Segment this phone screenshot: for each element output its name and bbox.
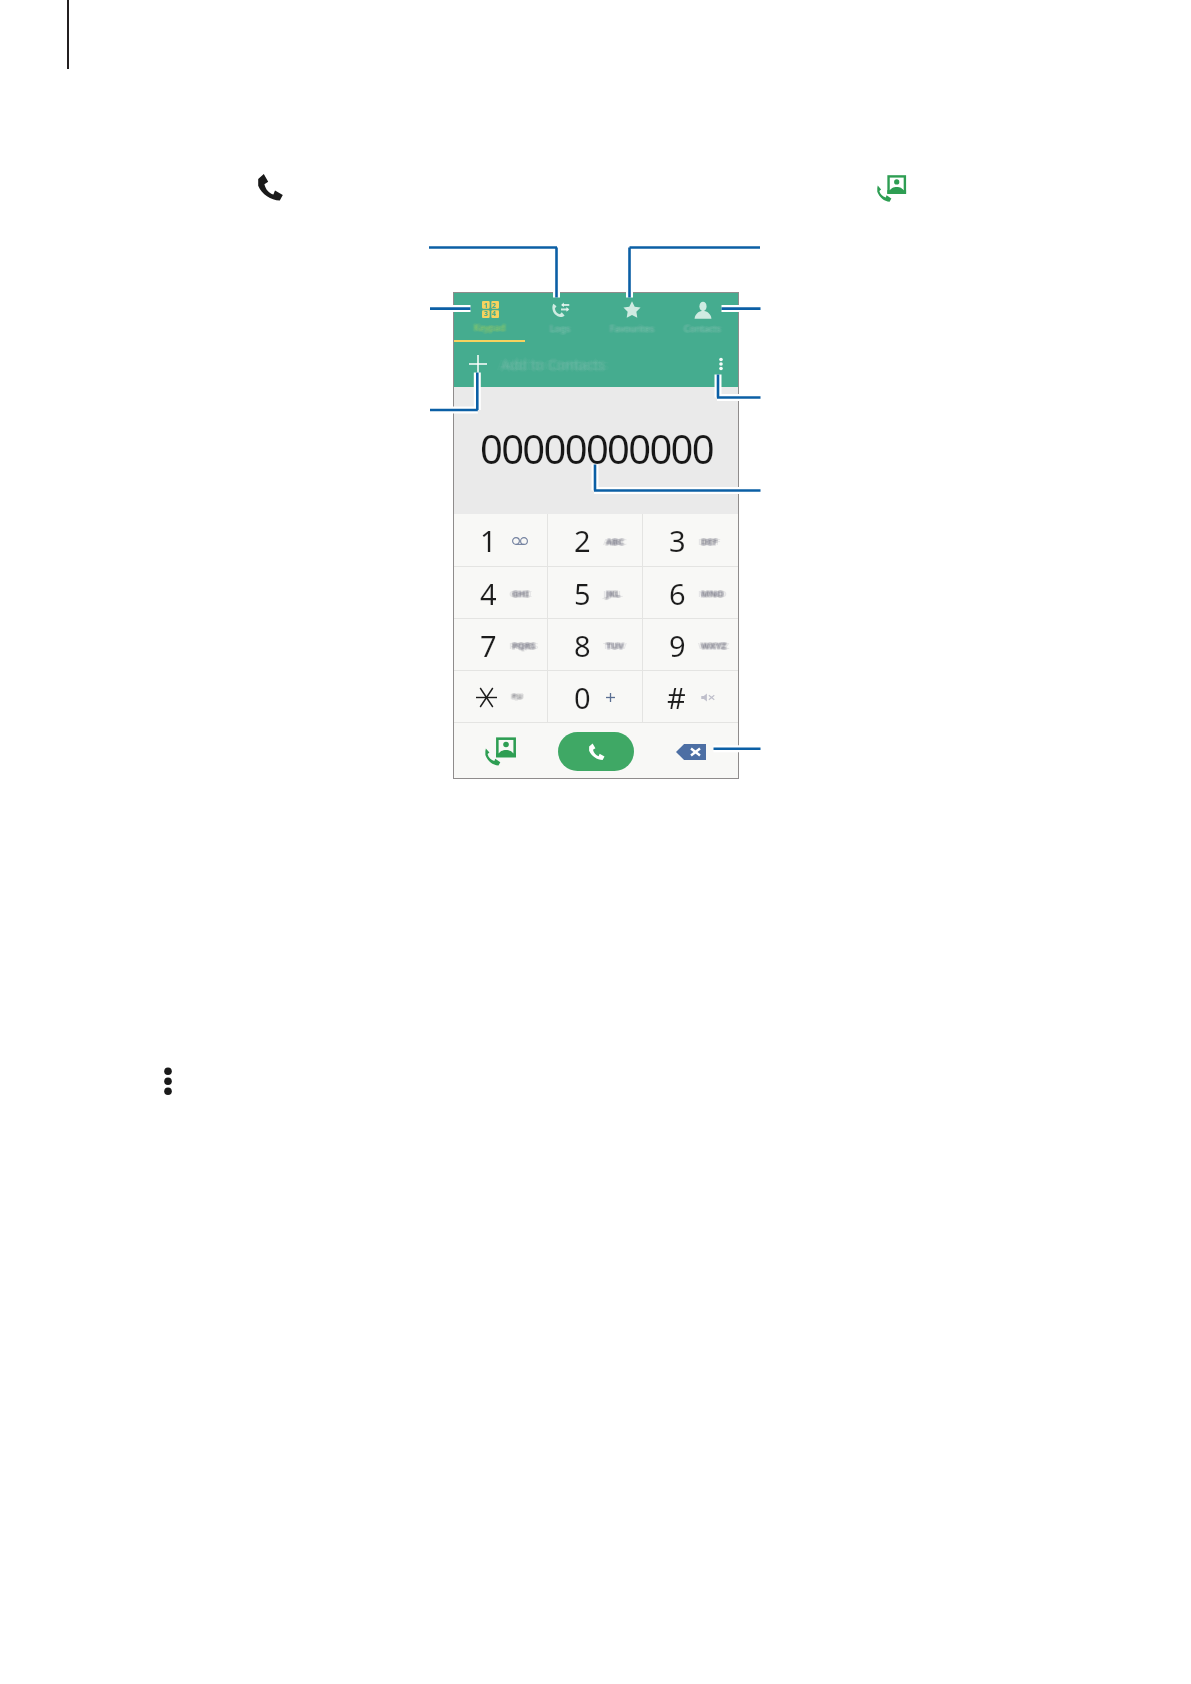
staticText: JKL xyxy=(609,587,623,599)
staticText: MNO xyxy=(698,587,721,599)
staticText: ABC xyxy=(605,536,623,548)
staticText: JKL xyxy=(603,587,617,599)
staticText: Keypad xyxy=(472,321,504,333)
staticText: WXYZ xyxy=(701,640,727,652)
staticText: GHI xyxy=(509,587,526,599)
button[interactable]: Contacts xyxy=(667,293,738,340)
staticText: Add to Contacts xyxy=(500,354,605,373)
staticText: MNO xyxy=(700,586,723,598)
staticText: GHI xyxy=(513,587,530,599)
staticText: Favourites xyxy=(612,322,656,334)
staticText: TUV xyxy=(607,640,625,652)
staticText: ABC xyxy=(605,535,623,547)
staticText: P,U xyxy=(514,692,525,702)
staticText: Contacts xyxy=(685,321,722,333)
staticText: ABC xyxy=(607,536,625,548)
button[interactable]: Phone xyxy=(250,167,290,207)
staticText: Logs xyxy=(548,322,569,334)
staticText: Favourites xyxy=(609,322,653,334)
button[interactable]: Key # xyxy=(643,671,738,723)
staticText: JKL xyxy=(607,588,621,600)
staticText: JKL xyxy=(607,587,621,599)
staticText: 5 xyxy=(574,574,591,613)
staticText: DEF xyxy=(698,535,715,547)
button[interactable]: Add xyxy=(454,342,501,386)
button[interactable]: Key 7 xyxy=(454,619,548,671)
staticText: Contacts xyxy=(682,322,719,334)
staticText: TUV xyxy=(605,640,623,652)
staticText: DEF xyxy=(701,535,718,547)
staticText: Keypad xyxy=(475,321,507,333)
staticText: Keypad xyxy=(475,322,507,334)
staticText: Logs xyxy=(549,321,570,333)
staticText: JKL xyxy=(607,586,621,598)
button[interactable]: More options xyxy=(158,1062,178,1096)
staticText: DEF xyxy=(702,536,719,548)
staticText: P,U xyxy=(513,691,524,701)
staticText: PQRS xyxy=(513,638,537,650)
button[interactable]: 1 xyxy=(454,293,525,340)
button[interactable]: Delete xyxy=(643,723,738,778)
staticText: GHI xyxy=(511,586,528,598)
button[interactable]: Video call contact xyxy=(876,172,908,204)
button[interactable]: More options xyxy=(703,342,738,386)
staticText: Logs xyxy=(550,322,571,334)
staticText: DEF xyxy=(701,534,718,546)
button[interactable]: Key 1 xyxy=(454,514,548,567)
button[interactable]: Key 4 xyxy=(454,567,548,619)
staticText: Contacts xyxy=(684,322,721,334)
staticText: P,U xyxy=(511,692,522,702)
staticText: GHI xyxy=(513,588,530,600)
staticText: PQRS xyxy=(513,639,537,651)
button[interactable]: Key 3 xyxy=(643,514,738,567)
button[interactable]: Key 2 xyxy=(548,514,643,567)
staticText: JKL xyxy=(605,588,619,600)
staticText: TUV xyxy=(607,639,625,651)
staticText: Keypad xyxy=(475,320,507,332)
staticText: ABC xyxy=(606,534,624,546)
staticText: Favourites xyxy=(608,322,652,334)
staticText: Add to Contacts xyxy=(501,355,606,374)
staticText: PQRS xyxy=(509,639,533,651)
button[interactable]: Favourites xyxy=(596,293,667,340)
staticText: ABC xyxy=(609,535,627,547)
staticText: WXYZ xyxy=(700,640,726,652)
staticText: Keypad xyxy=(474,322,506,334)
staticText: Favourites xyxy=(611,322,655,334)
staticText: Add to Contacts xyxy=(499,355,604,374)
staticText: Add to Contacts xyxy=(501,353,606,372)
staticText: ABC xyxy=(606,535,624,547)
staticText: Favourites xyxy=(611,323,655,335)
button[interactable]: Key 9 xyxy=(643,619,738,671)
staticText: WXYZ xyxy=(701,639,727,651)
staticText: P,U xyxy=(513,693,524,703)
staticText: Favourites xyxy=(611,321,655,333)
button[interactable]: Call xyxy=(558,732,634,771)
staticText: Keypad xyxy=(473,322,505,334)
staticText: Keypad xyxy=(476,321,508,333)
staticText: GHI xyxy=(515,587,532,599)
button[interactable]: Logs xyxy=(525,293,596,340)
button[interactable]: Key 6 xyxy=(643,567,738,619)
button[interactable]: Key 8 xyxy=(548,619,643,671)
staticText: MNO xyxy=(701,586,724,598)
button[interactable]: Key 5 xyxy=(548,567,643,619)
staticText: Add to Contacts xyxy=(502,354,607,373)
staticText: Logs xyxy=(550,321,571,333)
staticText: MNO xyxy=(702,588,725,600)
staticText: MNO xyxy=(704,587,727,599)
staticText: 3 xyxy=(484,309,489,318)
staticText: Keypad xyxy=(473,320,505,332)
staticText: P,U xyxy=(512,691,523,701)
staticText: ABC xyxy=(606,536,624,548)
staticText: DEF xyxy=(702,534,719,546)
button[interactable]: Key 0 xyxy=(548,671,643,723)
staticText: 6 xyxy=(669,574,686,613)
button[interactable]: Key * xyxy=(454,671,548,723)
staticText: Contacts xyxy=(683,323,720,335)
staticText: Contacts xyxy=(684,323,721,335)
button[interactable]: Video call xyxy=(454,723,548,778)
staticText: TUV xyxy=(606,640,624,652)
staticText: Contacts xyxy=(683,321,720,333)
staticText: P,U xyxy=(511,693,522,703)
